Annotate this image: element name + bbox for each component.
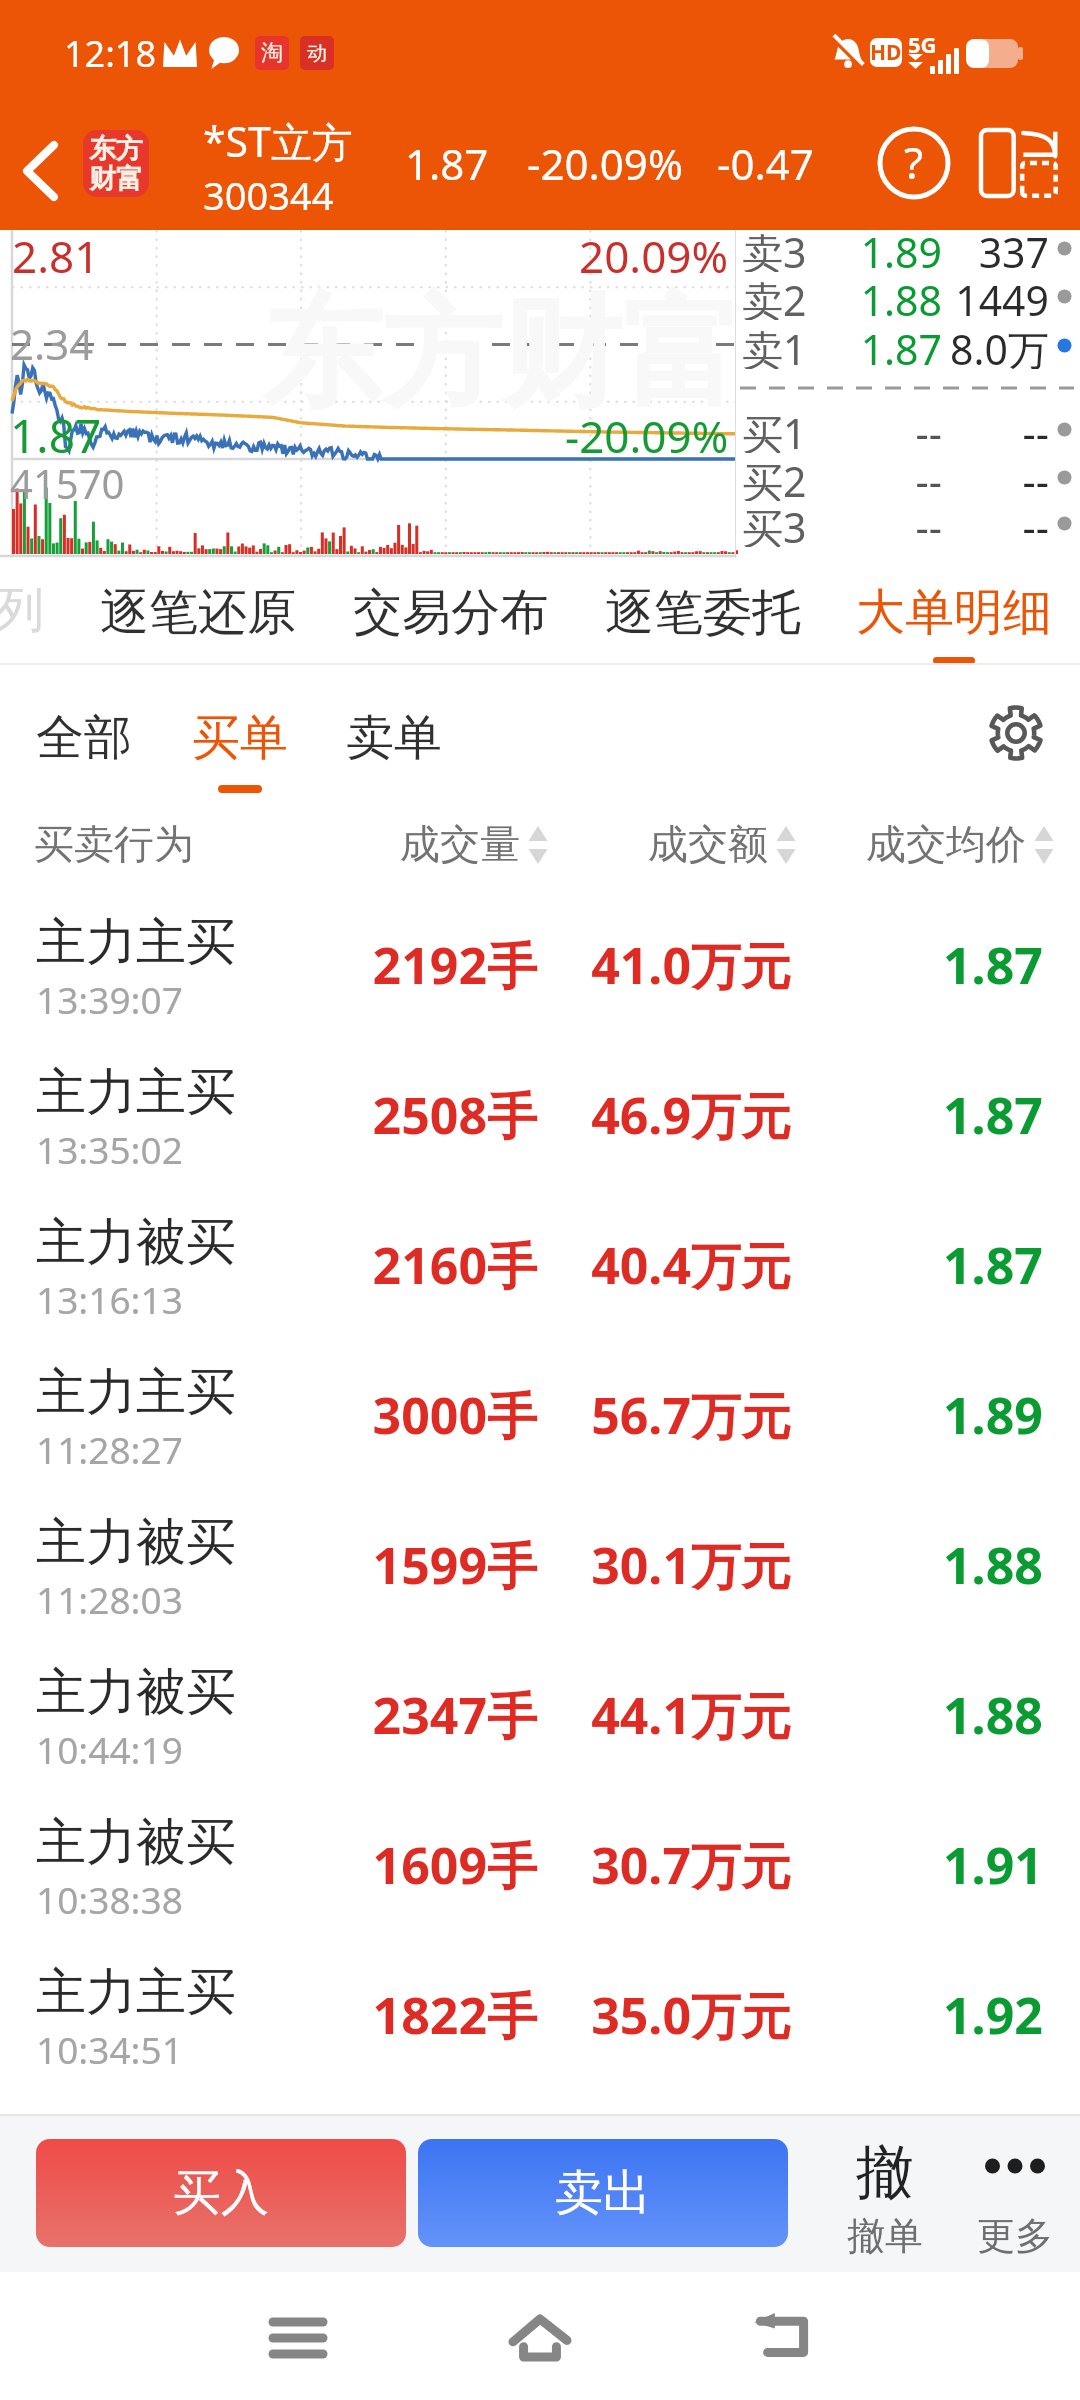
staticText: 30.1万元 bbox=[551, 1531, 791, 1599]
staticText: 2347手 bbox=[317, 1681, 537, 1749]
button[interactable]: Recents bbox=[238, 2278, 358, 2398]
staticText: 成交均价 bbox=[866, 819, 1026, 869]
staticText: 1.88 bbox=[943, 1531, 1043, 1599]
staticText: 3000手 bbox=[317, 1381, 537, 1449]
staticText: 1609手 bbox=[317, 1831, 537, 1899]
staticText: 1.89 bbox=[943, 1381, 1043, 1449]
staticText: 10:44:19 bbox=[36, 1724, 183, 1774]
staticText: 1.87 bbox=[405, 135, 489, 192]
button[interactable]: 成交均价 bbox=[866, 800, 1054, 890]
button[interactable]: 大单明细 bbox=[856, 558, 1052, 665]
button[interactable]: 逐笔委托 bbox=[605, 558, 801, 665]
staticText: 大单明细 bbox=[856, 582, 1052, 644]
staticText: 买3 bbox=[742, 499, 842, 547]
staticText: 8.0万 bbox=[942, 321, 1049, 369]
staticText: 逐笔还原 bbox=[100, 582, 296, 644]
staticText: 12:18 bbox=[64, 29, 157, 78]
button[interactable]: 主力主买 bbox=[0, 890, 1080, 1040]
staticText: 卖出 bbox=[555, 2163, 651, 2223]
staticText: 1.87 bbox=[10, 404, 102, 467]
staticText: 41.0万元 bbox=[551, 931, 791, 999]
staticText: -- bbox=[842, 499, 942, 547]
staticText: 1.87 bbox=[943, 1231, 1043, 1299]
button[interactable]: 买入 bbox=[36, 2139, 406, 2247]
staticText: 1599手 bbox=[317, 1531, 537, 1599]
staticText: -- bbox=[942, 405, 1049, 453]
staticText: -20.09% bbox=[565, 406, 729, 466]
staticText: 2.81 bbox=[12, 226, 100, 286]
staticText: 成交额 bbox=[648, 819, 768, 869]
staticText: 动 bbox=[307, 41, 327, 66]
staticText: 淘 bbox=[261, 39, 283, 67]
button[interactable]: 全部 bbox=[30, 665, 138, 800]
button[interactable]: 主力被买 bbox=[0, 1790, 1080, 1940]
staticText: 5G bbox=[908, 29, 937, 59]
staticText: 卖2 bbox=[742, 272, 842, 320]
staticText: 13:16:13 bbox=[36, 1274, 183, 1324]
staticText: 主力被买 bbox=[36, 1811, 236, 1874]
button[interactable]: 逐笔还原 bbox=[100, 558, 296, 665]
staticText: -- bbox=[842, 453, 942, 501]
staticText: HD bbox=[870, 38, 902, 67]
staticText: 卖单 bbox=[346, 708, 442, 768]
button[interactable]: 主力被买 bbox=[0, 1490, 1080, 1640]
staticText: 2160手 bbox=[317, 1231, 537, 1299]
staticText: 10:34:51 bbox=[36, 2024, 183, 2074]
button[interactable]: 主力主买 bbox=[0, 1340, 1080, 1490]
staticText: ? bbox=[904, 132, 924, 192]
staticText: 10:38:38 bbox=[36, 1874, 183, 1924]
staticText: 买1 bbox=[742, 405, 842, 453]
staticText: 1.92 bbox=[943, 1981, 1043, 2049]
staticText: 买卖行为 bbox=[34, 819, 194, 869]
staticText: 2.34 bbox=[10, 315, 94, 372]
button[interactable]: Home bbox=[480, 2278, 600, 2398]
staticText: 30.7万元 bbox=[551, 1831, 791, 1899]
button[interactable]: Rotate screen bbox=[962, 107, 1074, 219]
staticText: 撤 bbox=[856, 2136, 914, 2209]
staticText: 主力主买 bbox=[36, 1361, 236, 1424]
button[interactable]: 成交额 bbox=[648, 800, 796, 890]
staticText: 卖1 bbox=[742, 321, 842, 369]
staticText: 卖3 bbox=[742, 224, 842, 272]
staticText: 41570 bbox=[10, 456, 125, 510]
staticText: 更多 bbox=[977, 2212, 1053, 2260]
staticText: -0.47 bbox=[717, 135, 814, 192]
button[interactable]: 卖单 bbox=[340, 665, 448, 800]
staticText: 全部 bbox=[36, 708, 132, 768]
staticText: 20.09% bbox=[579, 226, 729, 286]
staticText: 买单 bbox=[192, 708, 288, 768]
staticText: 11:28:03 bbox=[36, 1574, 183, 1624]
staticText: -- bbox=[942, 499, 1049, 547]
staticText: 主力被买 bbox=[36, 1211, 236, 1274]
button[interactable]: 撤 bbox=[825, 2114, 945, 2272]
staticText: 买入 bbox=[173, 2163, 269, 2223]
staticText: 交易分布 bbox=[353, 582, 549, 644]
button[interactable]: 更多 bbox=[955, 2114, 1075, 2272]
staticText: 主力被买 bbox=[36, 1661, 236, 1724]
button[interactable]: 主力被买 bbox=[0, 1190, 1080, 1340]
staticText: 东方财富 bbox=[262, 278, 742, 429]
staticText: 13:35:02 bbox=[36, 1124, 183, 1174]
button[interactable]: Help bbox=[866, 115, 962, 211]
button[interactable]: Back bbox=[722, 2278, 842, 2398]
staticText: 56.7万元 bbox=[551, 1381, 791, 1449]
staticText: 13:39:07 bbox=[36, 974, 183, 1024]
staticText: 1.87 bbox=[943, 1081, 1043, 1149]
button[interactable]: 卖出 bbox=[418, 2139, 788, 2247]
button[interactable]: 买单 bbox=[186, 665, 294, 800]
button[interactable]: 主力主买 bbox=[0, 1040, 1080, 1190]
staticText: 35.0万元 bbox=[551, 1981, 791, 2049]
button[interactable]: 主力主买 bbox=[0, 1940, 1080, 2090]
staticText: 1.88 bbox=[842, 272, 942, 320]
staticText: 2508手 bbox=[317, 1081, 537, 1149]
staticText: 主力主买 bbox=[36, 911, 236, 974]
button[interactable]: 交易分布 bbox=[353, 558, 549, 665]
button[interactable]: Settings bbox=[974, 691, 1058, 775]
button[interactable]: 主力被买 bbox=[0, 1640, 1080, 1790]
staticText: -20.09% bbox=[527, 135, 683, 192]
staticText: 300344 bbox=[203, 169, 334, 221]
staticText: 东方 财富 bbox=[89, 132, 143, 196]
button[interactable]: 成交量 bbox=[400, 800, 548, 890]
button[interactable]: Back bbox=[0, 114, 84, 228]
staticText: 44.1万元 bbox=[551, 1681, 791, 1749]
